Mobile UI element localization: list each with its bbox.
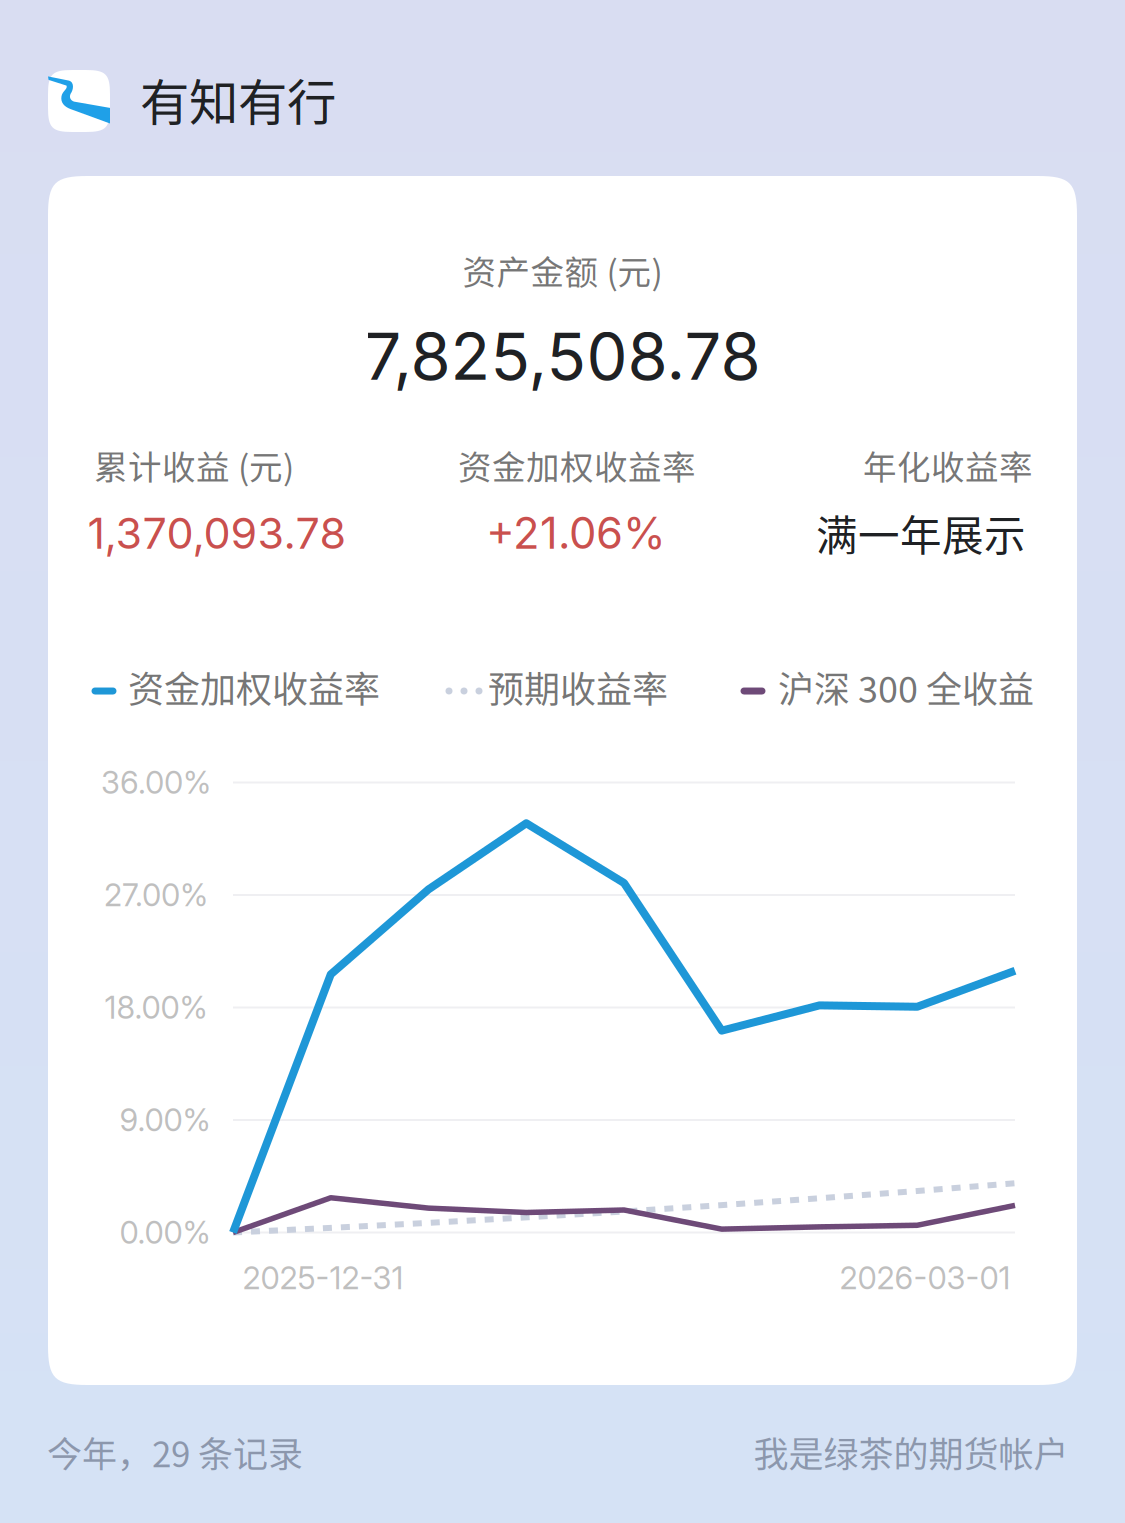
staticText: 资产金额 (元) xyxy=(462,246,662,294)
staticText: 预期收益率 xyxy=(488,661,668,713)
staticText: 资金加权收益率 xyxy=(458,441,696,489)
staticText: 有知有行 xyxy=(140,63,336,135)
staticText: 沪深 300 全收益 xyxy=(778,661,1034,713)
staticText: 7,825,508.78 xyxy=(364,317,760,395)
staticText: 今年，29 条记录 xyxy=(47,1427,303,1477)
staticText: 0.00% xyxy=(119,1214,210,1251)
button[interactable]: 今年，29 条记录 xyxy=(47,1427,303,1477)
staticText: +21.06% xyxy=(486,507,666,559)
staticText: 36.00% xyxy=(101,764,211,801)
staticText: 满一年展示 xyxy=(816,503,1026,563)
staticText: 27.00% xyxy=(104,876,208,914)
staticText: 年化收益率 xyxy=(863,441,1033,489)
staticText: 2025-12-31 xyxy=(242,1259,403,1297)
staticText: 累计收益 (元) xyxy=(94,441,294,489)
staticText: 2026-03-01 xyxy=(839,1259,1010,1297)
staticText: 1,370,093.78 xyxy=(87,507,346,559)
staticText: 我是绿茶的期货帐户 xyxy=(753,1427,1068,1477)
staticText: 9.00% xyxy=(119,1101,210,1139)
staticText: 18.00% xyxy=(104,989,207,1026)
staticText: 资金加权收益率 xyxy=(128,661,380,713)
button[interactable]: 我是绿茶的期货帐户 xyxy=(753,1427,1068,1477)
button[interactable]: 有知有行 xyxy=(48,65,336,137)
